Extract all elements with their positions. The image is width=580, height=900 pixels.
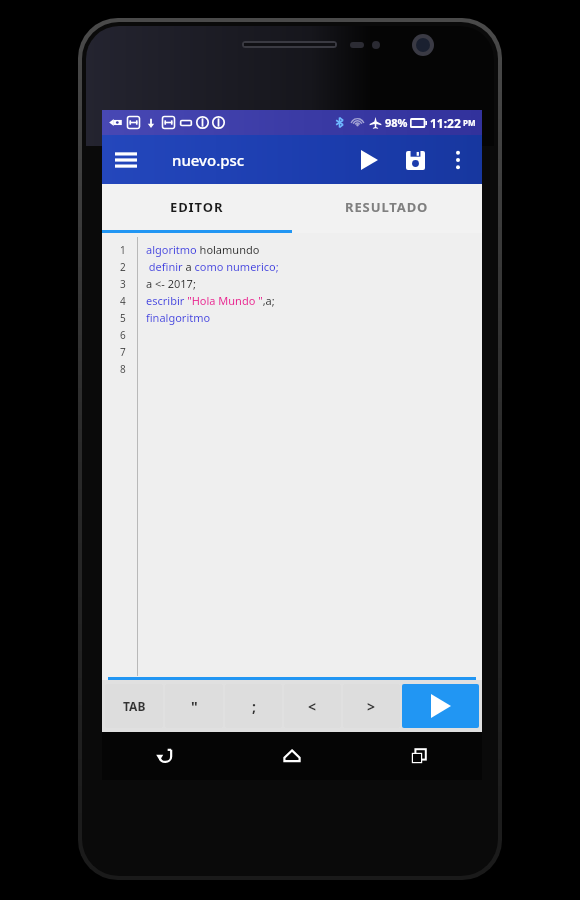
staticText: 7 bbox=[120, 345, 126, 359]
staticText: 4 bbox=[120, 294, 126, 308]
staticText: EDITOR bbox=[170, 198, 224, 216]
button[interactable]: Recent apps bbox=[355, 732, 482, 780]
staticText: PM bbox=[461, 117, 476, 128]
button[interactable]: Menu bbox=[102, 136, 150, 184]
staticText: 1 bbox=[120, 243, 126, 257]
button[interactable]: Execute bbox=[402, 684, 479, 728]
button[interactable]: > bbox=[343, 684, 400, 728]
button[interactable]: TAB bbox=[105, 684, 163, 728]
button[interactable]: Run bbox=[346, 137, 392, 183]
staticText: algoritmo holamundo bbox=[146, 242, 260, 257]
staticText: RESULTADO bbox=[345, 198, 429, 216]
button[interactable]: Back bbox=[102, 732, 228, 780]
button[interactable]: Save bbox=[392, 137, 438, 183]
staticText: nuevo.psc bbox=[172, 150, 245, 170]
staticText: 5 bbox=[120, 311, 126, 325]
staticText: < bbox=[308, 697, 317, 716]
button[interactable]: More options bbox=[438, 140, 478, 180]
staticText: a <- 2017; bbox=[146, 276, 196, 291]
staticText: 2 bbox=[120, 260, 126, 274]
staticText: 3 bbox=[120, 277, 126, 291]
staticText: 8 bbox=[120, 362, 126, 376]
staticText: TAB bbox=[123, 698, 146, 714]
staticText: 6 bbox=[120, 328, 126, 342]
staticText: escribir "Hola Mundo ",a; bbox=[146, 293, 275, 308]
button[interactable]: < bbox=[284, 684, 341, 728]
button[interactable]: EDITOR bbox=[102, 184, 292, 230]
staticText: definir a como numerico; bbox=[146, 259, 279, 274]
staticText: " bbox=[191, 697, 198, 716]
button[interactable]: Home bbox=[228, 732, 355, 780]
button[interactable]: " bbox=[165, 684, 223, 728]
staticText: 98% bbox=[385, 115, 408, 130]
button[interactable]: ; bbox=[225, 684, 282, 728]
staticText: finalgoritmo bbox=[146, 310, 211, 325]
staticText: 11:22 bbox=[430, 115, 461, 131]
staticText: > bbox=[367, 697, 376, 716]
button[interactable]: RESULTADO bbox=[292, 184, 482, 230]
staticText: ; bbox=[252, 697, 256, 716]
